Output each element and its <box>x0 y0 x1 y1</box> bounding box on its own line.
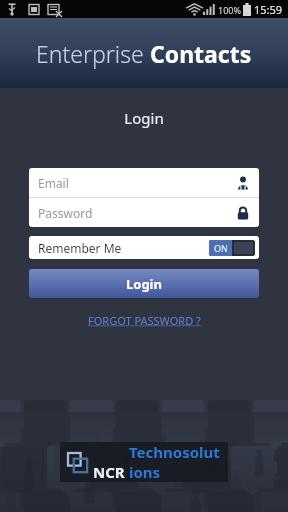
other: Password field <box>236 206 250 220</box>
staticText: NCR <box>93 462 129 482</box>
button[interactable]: Password <box>29 198 259 227</box>
button[interactable]: FORGOT PASSWORD ? <box>82 311 207 330</box>
staticText: 100% <box>218 4 241 16</box>
staticText: Remember Me <box>38 240 209 256</box>
button[interactable]: Login <box>29 269 259 298</box>
staticText: Password <box>38 205 236 221</box>
other: Email field <box>236 176 250 190</box>
staticText: 15:59 <box>254 2 283 17</box>
staticText: Contacts <box>150 38 252 69</box>
staticText: Login <box>126 275 162 293</box>
staticText: Email <box>38 175 236 191</box>
staticText: Login <box>0 108 288 128</box>
staticText: FORGOT PASSWORD ? <box>88 313 201 328</box>
button[interactable]: Remember Me <box>29 236 259 259</box>
button[interactable]: Email <box>29 168 259 197</box>
staticText: Enterprise <box>36 38 150 69</box>
staticText: ON <box>214 242 228 254</box>
staticText: Technosolutions <box>129 442 221 482</box>
